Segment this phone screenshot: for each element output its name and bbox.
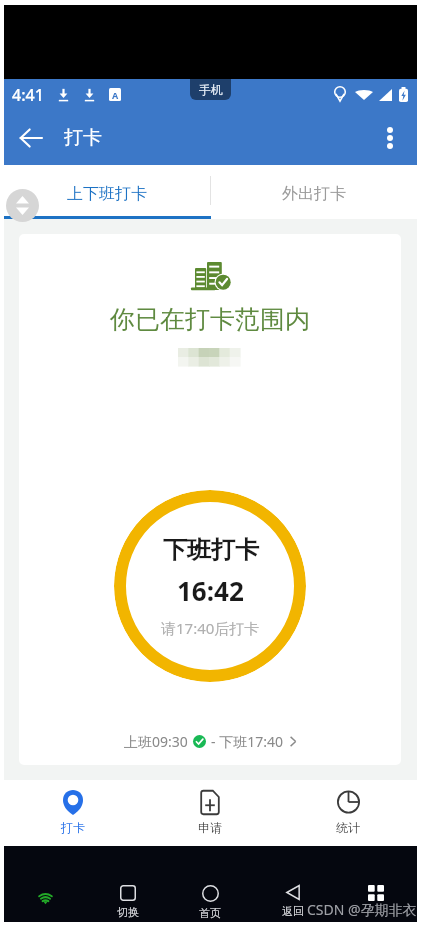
- staticText: 打卡: [64, 126, 102, 150]
- staticText: 打卡: [61, 820, 85, 835]
- button[interactable]: 切换: [108, 885, 148, 919]
- staticText: 4:41: [12, 84, 44, 106]
- button[interactable]: 申请: [141, 780, 279, 846]
- button[interactable]: 首页: [190, 885, 230, 920]
- staticText: 上下班打卡: [67, 184, 147, 204]
- staticText: A: [112, 89, 119, 101]
- button[interactable]: Back: [4, 111, 58, 165]
- button[interactable]: 下班打卡: [114, 490, 306, 682]
- button[interactable]: 返回: [273, 885, 313, 918]
- staticText: 请17:40后打卡: [161, 618, 260, 638]
- button[interactable]: Expand: [6, 189, 39, 222]
- staticText: CSDN @孕期非衣: [307, 900, 417, 919]
- button[interactable]: 统计: [279, 780, 417, 846]
- staticText: 下班打卡: [163, 535, 259, 565]
- button[interactable]: Recent apps: [368, 885, 384, 901]
- staticText: 申请: [198, 820, 222, 835]
- staticText: 外出打卡: [282, 184, 346, 204]
- staticText: 你已在打卡范围内: [110, 304, 310, 335]
- button[interactable]: 上下班打卡: [4, 165, 210, 219]
- button[interactable]: 上班09:30: [118, 728, 302, 755]
- staticText: 返回: [282, 904, 304, 918]
- staticText: 16:42: [177, 573, 244, 608]
- staticText: 上班09:30: [124, 732, 188, 751]
- staticText: 首页: [199, 906, 221, 920]
- button[interactable]: 外出打卡: [210, 165, 417, 219]
- button[interactable]: 打卡: [4, 780, 141, 846]
- staticText: 手机: [199, 82, 223, 97]
- staticText: 切换: [117, 905, 139, 919]
- staticText: - 下班17:40: [211, 732, 283, 751]
- staticText: 统计: [336, 820, 360, 835]
- button[interactable]: More options: [362, 110, 417, 165]
